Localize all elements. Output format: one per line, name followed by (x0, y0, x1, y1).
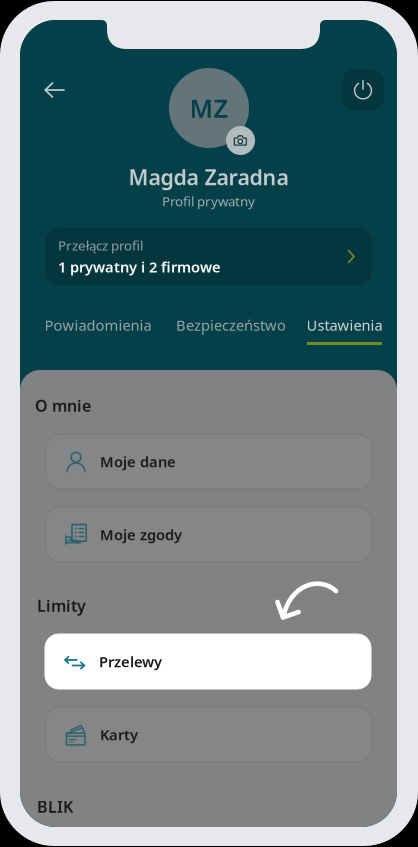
staticText: O mnie (35, 395, 91, 416)
staticText: Ustawienia (306, 315, 382, 335)
button[interactable]: Wyloguj (342, 69, 384, 111)
staticText: BLIK (37, 796, 73, 817)
button[interactable]: Karty (46, 707, 372, 762)
button[interactable]: Zmień zdjęcie (226, 126, 255, 155)
staticText: Moje dane (100, 452, 176, 471)
button[interactable]: Przelewy (45, 634, 371, 689)
staticText: Przełącz profil (58, 236, 143, 254)
button[interactable]: Bezpieczeństwo (170, 308, 292, 345)
staticText: Karty (100, 725, 138, 744)
button[interactable]: Moje zgody (46, 507, 372, 562)
button[interactable]: Przełącz profil (45, 228, 372, 285)
button[interactable]: Ustawienia (305, 308, 384, 345)
staticText: Powiadomienia (44, 315, 151, 335)
staticText: 1 prywatny i 2 firmowe (58, 257, 221, 277)
staticText: MZ (189, 91, 228, 125)
button[interactable]: Powiadomienia (38, 308, 158, 345)
button[interactable]: Wstecz (32, 70, 77, 110)
staticText: Magda Zaradna (128, 163, 288, 191)
staticText: Profil prywatny (162, 192, 255, 210)
staticText: Przelewy (99, 652, 162, 671)
button[interactable]: Moje dane (46, 434, 372, 489)
staticText: Moje zgody (100, 525, 182, 544)
staticText: Limity (37, 595, 86, 616)
staticText: Bezpieczeństwo (176, 315, 286, 335)
